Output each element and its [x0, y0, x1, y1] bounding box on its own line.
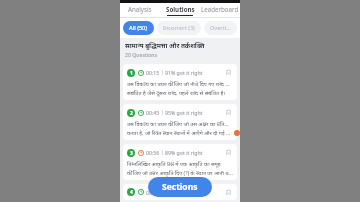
staticText: Analysis — [128, 5, 152, 13]
staticText: Leaderboard — [201, 5, 239, 13]
button[interactable]: Bookmark — [224, 108, 233, 117]
staticText: Incorrect (3) — [163, 24, 195, 32]
staticText: Sections — [162, 181, 198, 193]
staticText: 00:15 — [146, 69, 160, 76]
staticText: 00:12 — [146, 189, 160, 196]
staticText: All (50) — [129, 24, 148, 32]
staticText: 91% got it right — [165, 69, 203, 76]
staticText: 00:45 — [146, 109, 160, 116]
staticText: संबंधित है जैसे दूसरा शब्द, पहले शब्द से… — [127, 89, 226, 96]
button[interactable]: Analysis — [120, 3, 160, 17]
staticText: Solutions — [166, 5, 195, 13]
staticText: 86% got it right — [165, 189, 203, 196]
staticText: 95% got it right — [165, 109, 203, 116]
staticText: 2 — [130, 110, 133, 117]
staticText: 1 — [130, 70, 133, 77]
button[interactable]: Bookmark — [224, 188, 233, 196]
staticText: सामान्य बुद्धिमत्ता और तर्कशक्ति — [125, 41, 205, 50]
staticText: उस विकल्प का चयन कीजिए जो नीचे दिए गए शब… — [127, 80, 233, 87]
staticText: 89% got it right — [165, 149, 203, 156]
button[interactable]: 2 — [123, 104, 237, 140]
button[interactable]: 3 — [123, 144, 237, 180]
button[interactable]: All (50) — [123, 21, 154, 35]
button[interactable]: Overtime (24) — [204, 21, 237, 35]
button[interactable]: Solutions — [160, 3, 200, 17]
button[interactable]: Bookmark — [224, 68, 233, 77]
staticText: करता है, जो रिक्त स्थान स्थानों में आएँग… — [127, 129, 233, 136]
button[interactable]: Bookmark — [224, 148, 233, 157]
button[interactable]: Incorrect (3) — [157, 21, 201, 35]
staticText: निम्नलिखित आकृति प्रश्न में एक आकृति का … — [127, 160, 221, 167]
button[interactable]: Leaderboard — [200, 3, 240, 17]
button[interactable]: 4 — [123, 184, 237, 200]
button[interactable]: 1 — [123, 64, 237, 100]
staticText: 20 Questions — [125, 51, 157, 58]
staticText: 00:56 — [146, 149, 160, 156]
button[interactable]: Sections — [148, 177, 212, 197]
staticText: उस विकल्प का चयन कीजिए जो उस अक्षर का प्… — [127, 120, 233, 127]
staticText: कीजिए जो उत्तर आकृति दिए (?) के स्थान पर… — [127, 169, 233, 176]
staticText: Overtime (24) — [210, 24, 231, 32]
staticText: 3 — [130, 150, 133, 157]
staticText: 4 — [130, 189, 133, 196]
